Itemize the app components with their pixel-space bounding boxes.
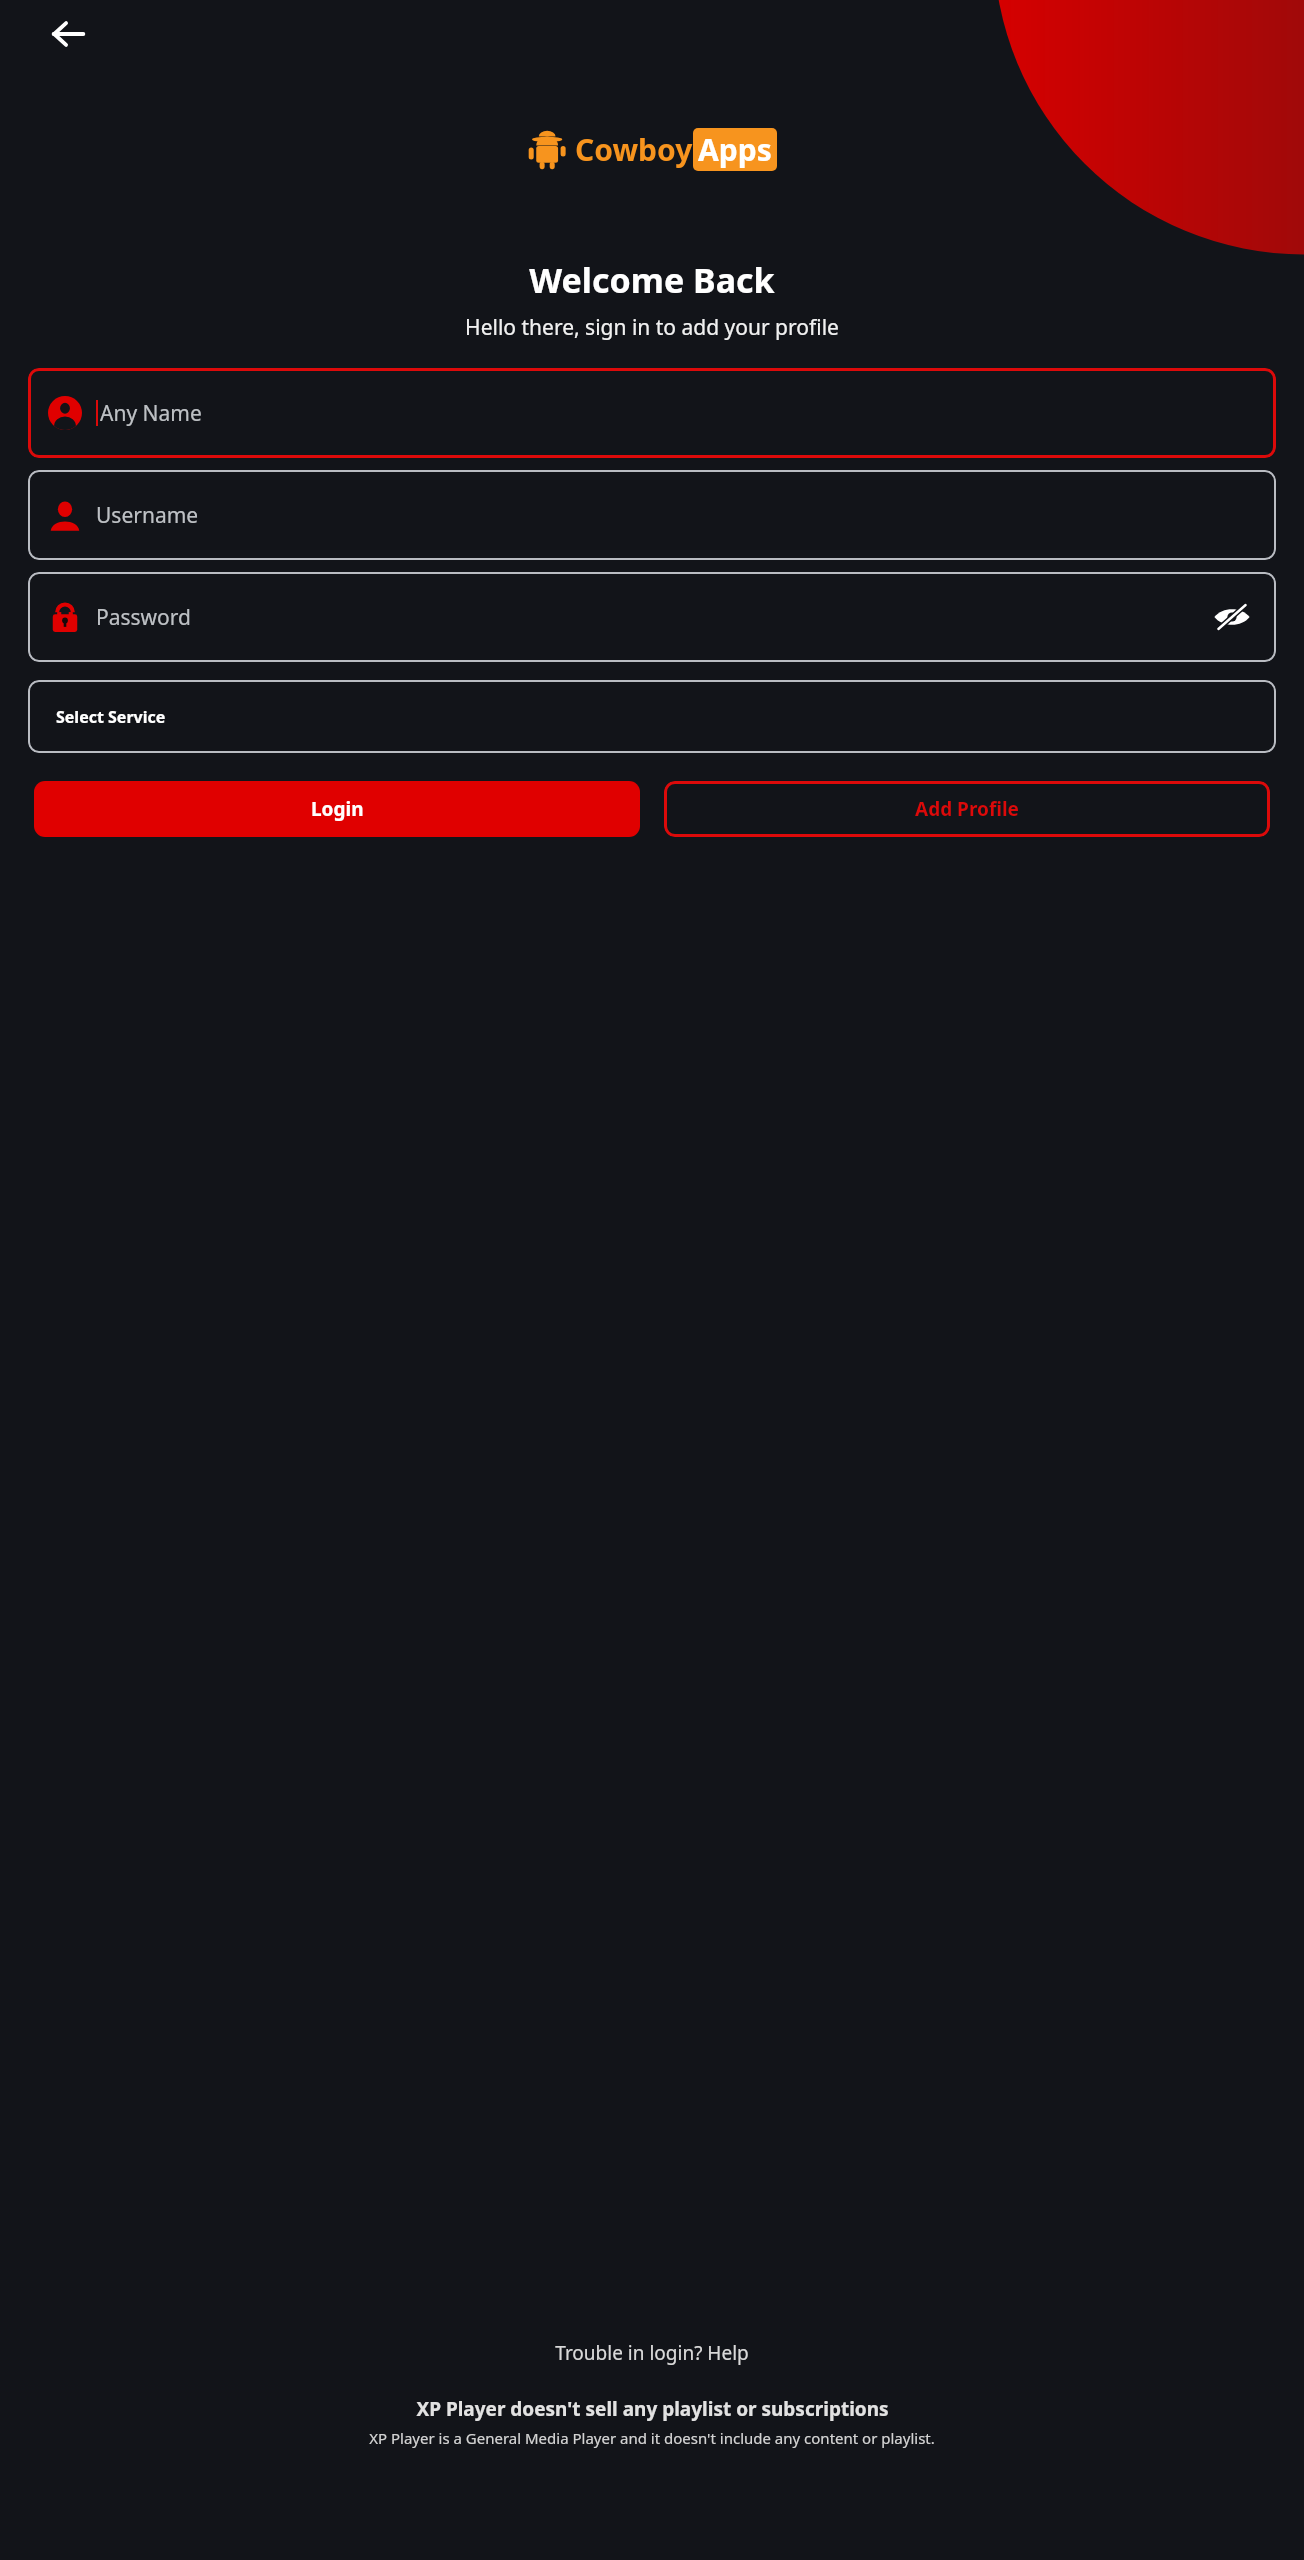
button[interactable]: Username — [28, 470, 1276, 560]
staticText: Password — [96, 603, 191, 632]
staticText: Add Profile — [915, 796, 1019, 822]
button[interactable]: Any Name — [28, 368, 1276, 458]
button[interactable]: Trouble in login? Help — [547, 2336, 757, 2370]
staticText: XP Player doesn't sell any playlist or s… — [416, 2396, 889, 2422]
staticText: Hello there, sign in to add your profile — [465, 313, 839, 342]
button[interactable]: Back — [38, 4, 98, 64]
button[interactable]: Add Profile — [664, 781, 1270, 837]
staticText: Trouble in login? Help — [555, 2340, 749, 2366]
button[interactable]: Toggle password visibility — [1208, 593, 1256, 641]
button[interactable]: Password — [28, 572, 1276, 662]
staticText: Any Name — [100, 399, 202, 428]
staticText: Cowboy — [575, 129, 693, 170]
staticText: Welcome Back — [529, 257, 775, 303]
staticText: Login — [311, 796, 364, 822]
staticText: XP Player is a General Media Player and … — [369, 2428, 935, 2448]
staticText: Apps — [698, 129, 772, 170]
button[interactable]: Login — [34, 781, 640, 837]
button[interactable]: Select Service — [28, 680, 1276, 753]
staticText: Select Service — [56, 706, 166, 728]
staticText: Username — [96, 501, 199, 530]
